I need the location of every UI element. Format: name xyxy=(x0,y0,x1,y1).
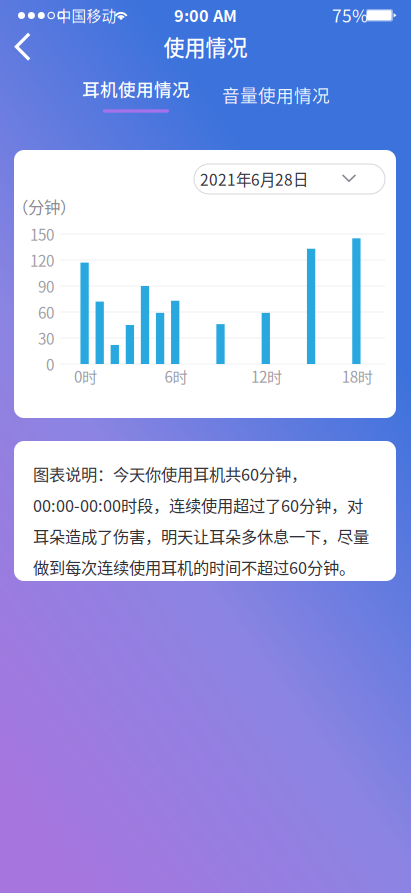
staticText: 18时 xyxy=(342,365,373,387)
button[interactable]: 音量使用情况 xyxy=(216,72,336,116)
button[interactable]: 耳机使用情况 xyxy=(76,74,196,118)
staticText: 120 xyxy=(30,249,54,271)
staticText: 中国移动 xyxy=(56,4,116,26)
staticText: 图表说明：今天你使用耳机共60分钟， 00:00-00:00时段，连续使用超过了… xyxy=(33,462,369,579)
button[interactable]: Back xyxy=(0,24,44,68)
staticText: 音量使用情况 xyxy=(222,82,330,107)
staticText: 90 xyxy=(38,275,54,297)
staticText: 2021年6月28日 xyxy=(200,168,308,190)
staticText: 9:00 AM xyxy=(174,3,237,27)
staticText: 耳机使用情况 xyxy=(82,76,190,101)
button[interactable]: 2021年6月28日 xyxy=(194,164,385,194)
staticText: 0 xyxy=(46,353,54,375)
staticText: 75% xyxy=(332,2,368,28)
staticText: 使用情况 xyxy=(163,31,247,62)
staticText: 150 xyxy=(30,223,54,245)
staticText: 60 xyxy=(38,301,54,323)
staticText: 30 xyxy=(38,327,54,349)
staticText: 0时 xyxy=(74,365,97,387)
staticText: 6时 xyxy=(164,365,187,387)
staticText: 12时 xyxy=(251,365,282,387)
staticText: （分钟） xyxy=(12,194,76,218)
